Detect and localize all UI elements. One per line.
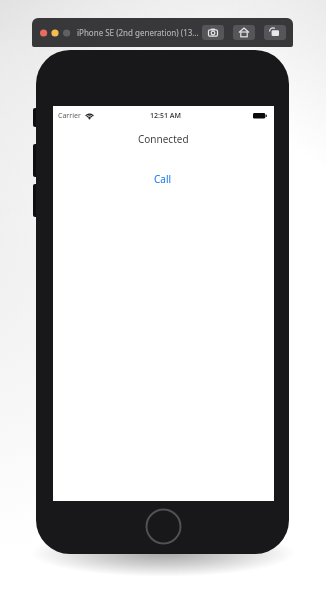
button[interactable]: Call	[151, 169, 175, 189]
button[interactable]	[264, 25, 286, 40]
staticText: Connected	[138, 132, 189, 146]
button[interactable]	[202, 25, 224, 40]
button[interactable]	[233, 25, 255, 40]
staticText: iPhone SE (2nd generation) (13…	[77, 27, 199, 38]
staticText: 12:51 AM	[150, 111, 181, 121]
staticText: Carrier	[58, 111, 81, 121]
button[interactable]	[145, 508, 182, 545]
staticText: Call	[154, 172, 172, 186]
